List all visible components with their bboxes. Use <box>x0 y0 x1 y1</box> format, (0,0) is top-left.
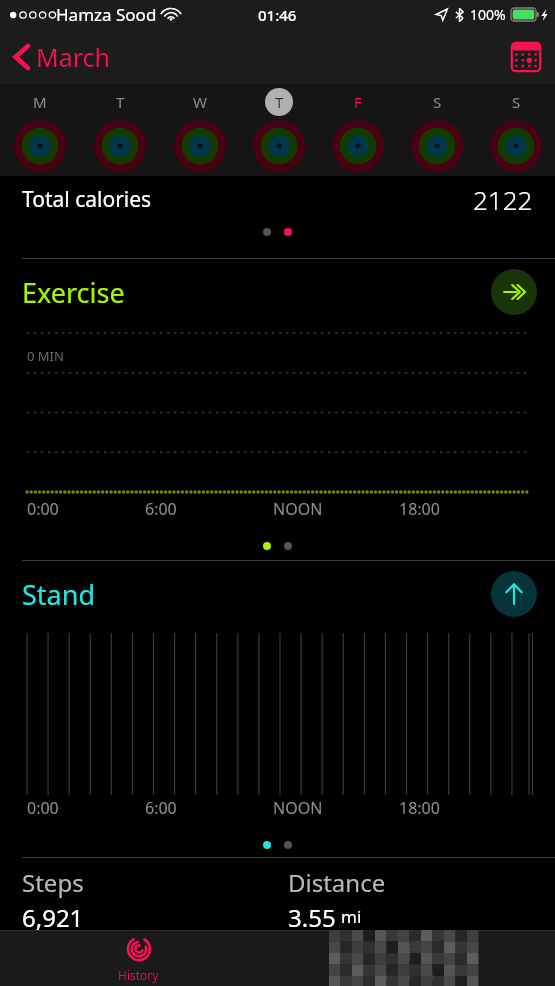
staticText: 2122 <box>473 182 533 217</box>
button[interactable]: Steps <box>22 858 288 930</box>
staticText: M <box>33 92 47 112</box>
button[interactable]: History <box>0 930 277 986</box>
staticText: Stand <box>22 576 96 613</box>
staticText: History <box>118 967 159 983</box>
button[interactable]: Achievements <box>277 930 555 986</box>
button[interactable]: S <box>397 84 476 176</box>
staticText: 6:00 <box>145 498 177 520</box>
staticText: 3.55 <box>288 901 336 930</box>
staticText: 18:00 <box>399 797 440 819</box>
button[interactable]: F <box>318 84 397 176</box>
staticText: Hamza Sood <box>56 3 157 26</box>
button[interactable]: S <box>476 84 555 176</box>
staticText: T <box>116 92 125 112</box>
staticText: Steps <box>22 866 84 899</box>
staticText: mi <box>341 905 362 928</box>
staticText: Distance <box>288 866 386 899</box>
staticText: W <box>193 92 207 112</box>
button[interactable]: Stand details <box>491 571 537 617</box>
button[interactable]: W <box>160 84 239 176</box>
staticText: Total calories <box>22 185 152 214</box>
button[interactable]: Calendar <box>511 42 541 72</box>
button[interactable]: T <box>80 84 160 176</box>
button[interactable]: Exercise details <box>491 269 537 315</box>
staticText: Achievements <box>377 967 456 983</box>
staticText: F <box>354 92 362 112</box>
staticText: 0 MIN <box>27 347 64 365</box>
button[interactable]: Distance <box>288 858 555 930</box>
staticText: 6,921 <box>22 901 84 930</box>
staticText: 100% <box>470 5 506 24</box>
staticText: T <box>275 92 284 112</box>
staticText: Exercise <box>22 274 125 311</box>
staticText: 18:00 <box>399 498 440 520</box>
button[interactable]: M <box>0 84 80 176</box>
button[interactable]: T <box>239 84 318 176</box>
staticText: 0:00 <box>27 797 59 819</box>
staticText: NOON <box>273 797 323 819</box>
staticText: 0:00 <box>27 498 59 520</box>
staticText: S <box>512 92 521 112</box>
staticText: March <box>36 40 110 74</box>
staticText: NOON <box>273 498 323 520</box>
staticText: 01:46 <box>258 5 297 25</box>
button[interactable]: March <box>0 34 120 80</box>
staticText: S <box>433 92 442 112</box>
staticText: 6:00 <box>145 797 177 819</box>
